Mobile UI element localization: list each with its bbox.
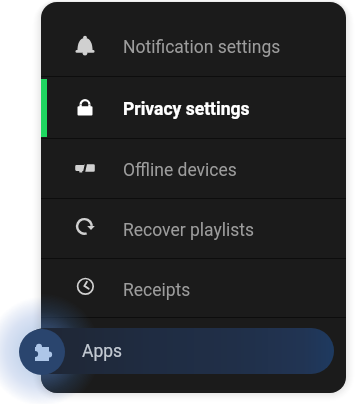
staticText: Receipts [123,280,191,301]
button[interactable]: Apps [19,329,65,375]
button[interactable]: Notification settings [41,15,346,76]
staticText: Offline devices [123,160,237,181]
staticText: Apps [82,341,123,362]
button[interactable]: Offline devices [41,139,346,198]
staticText: Recover playlists [123,220,255,241]
staticText: Notification settings [123,37,281,58]
button[interactable]: Recover playlists [41,199,346,258]
button[interactable]: Apps [22,328,334,374]
button[interactable]: Receipts [41,259,346,317]
staticText: Privacy settings [123,99,250,120]
button[interactable]: Privacy settings [41,77,346,138]
